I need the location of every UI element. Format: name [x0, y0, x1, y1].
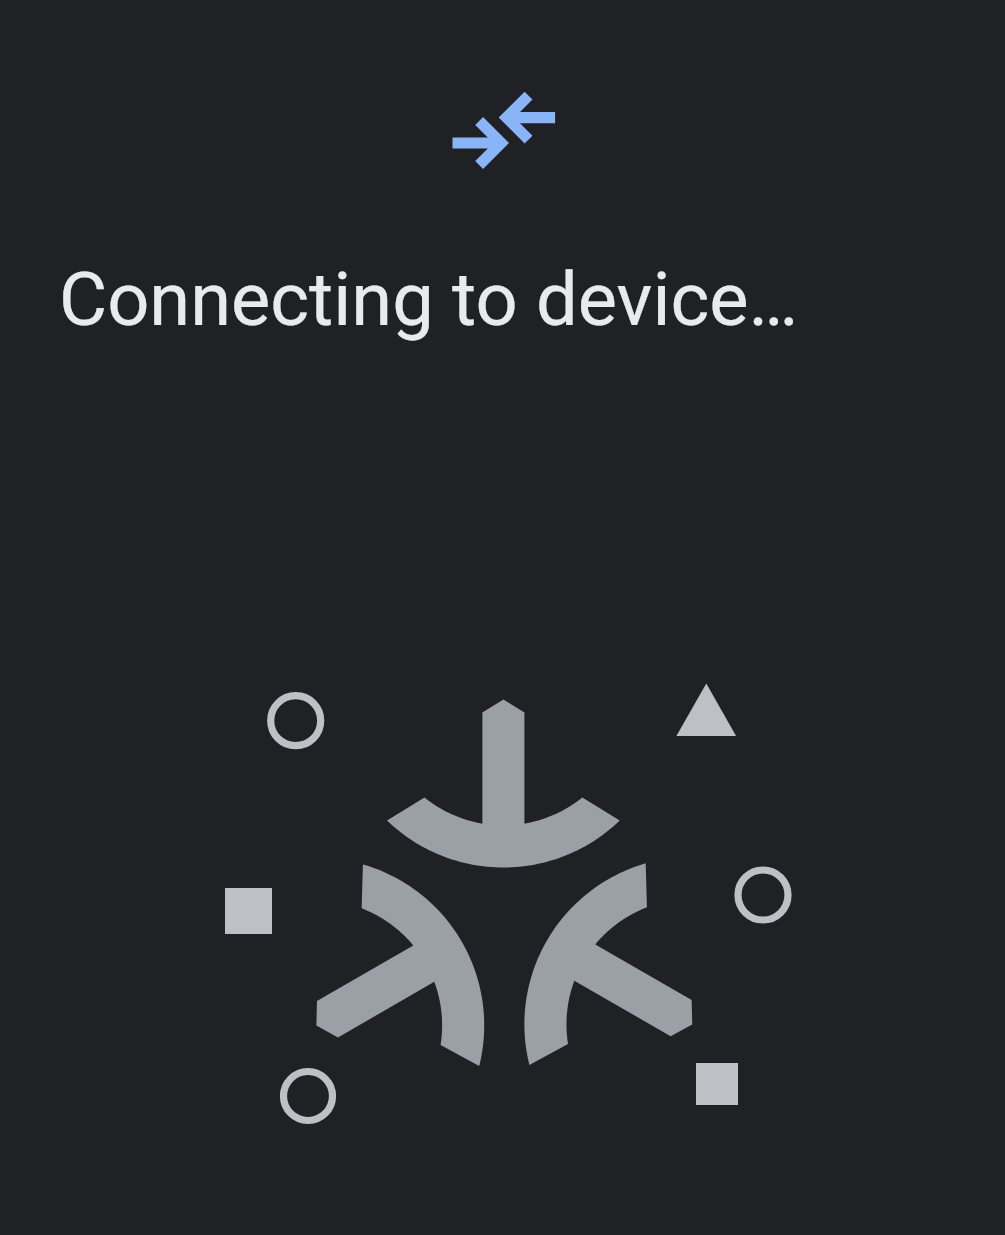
other: Searching for nearby devices: [0, 0, 1005, 1235]
staticText: Connecting to device…: [59, 256, 798, 343]
other: Quick Share: [441, 83, 567, 178]
